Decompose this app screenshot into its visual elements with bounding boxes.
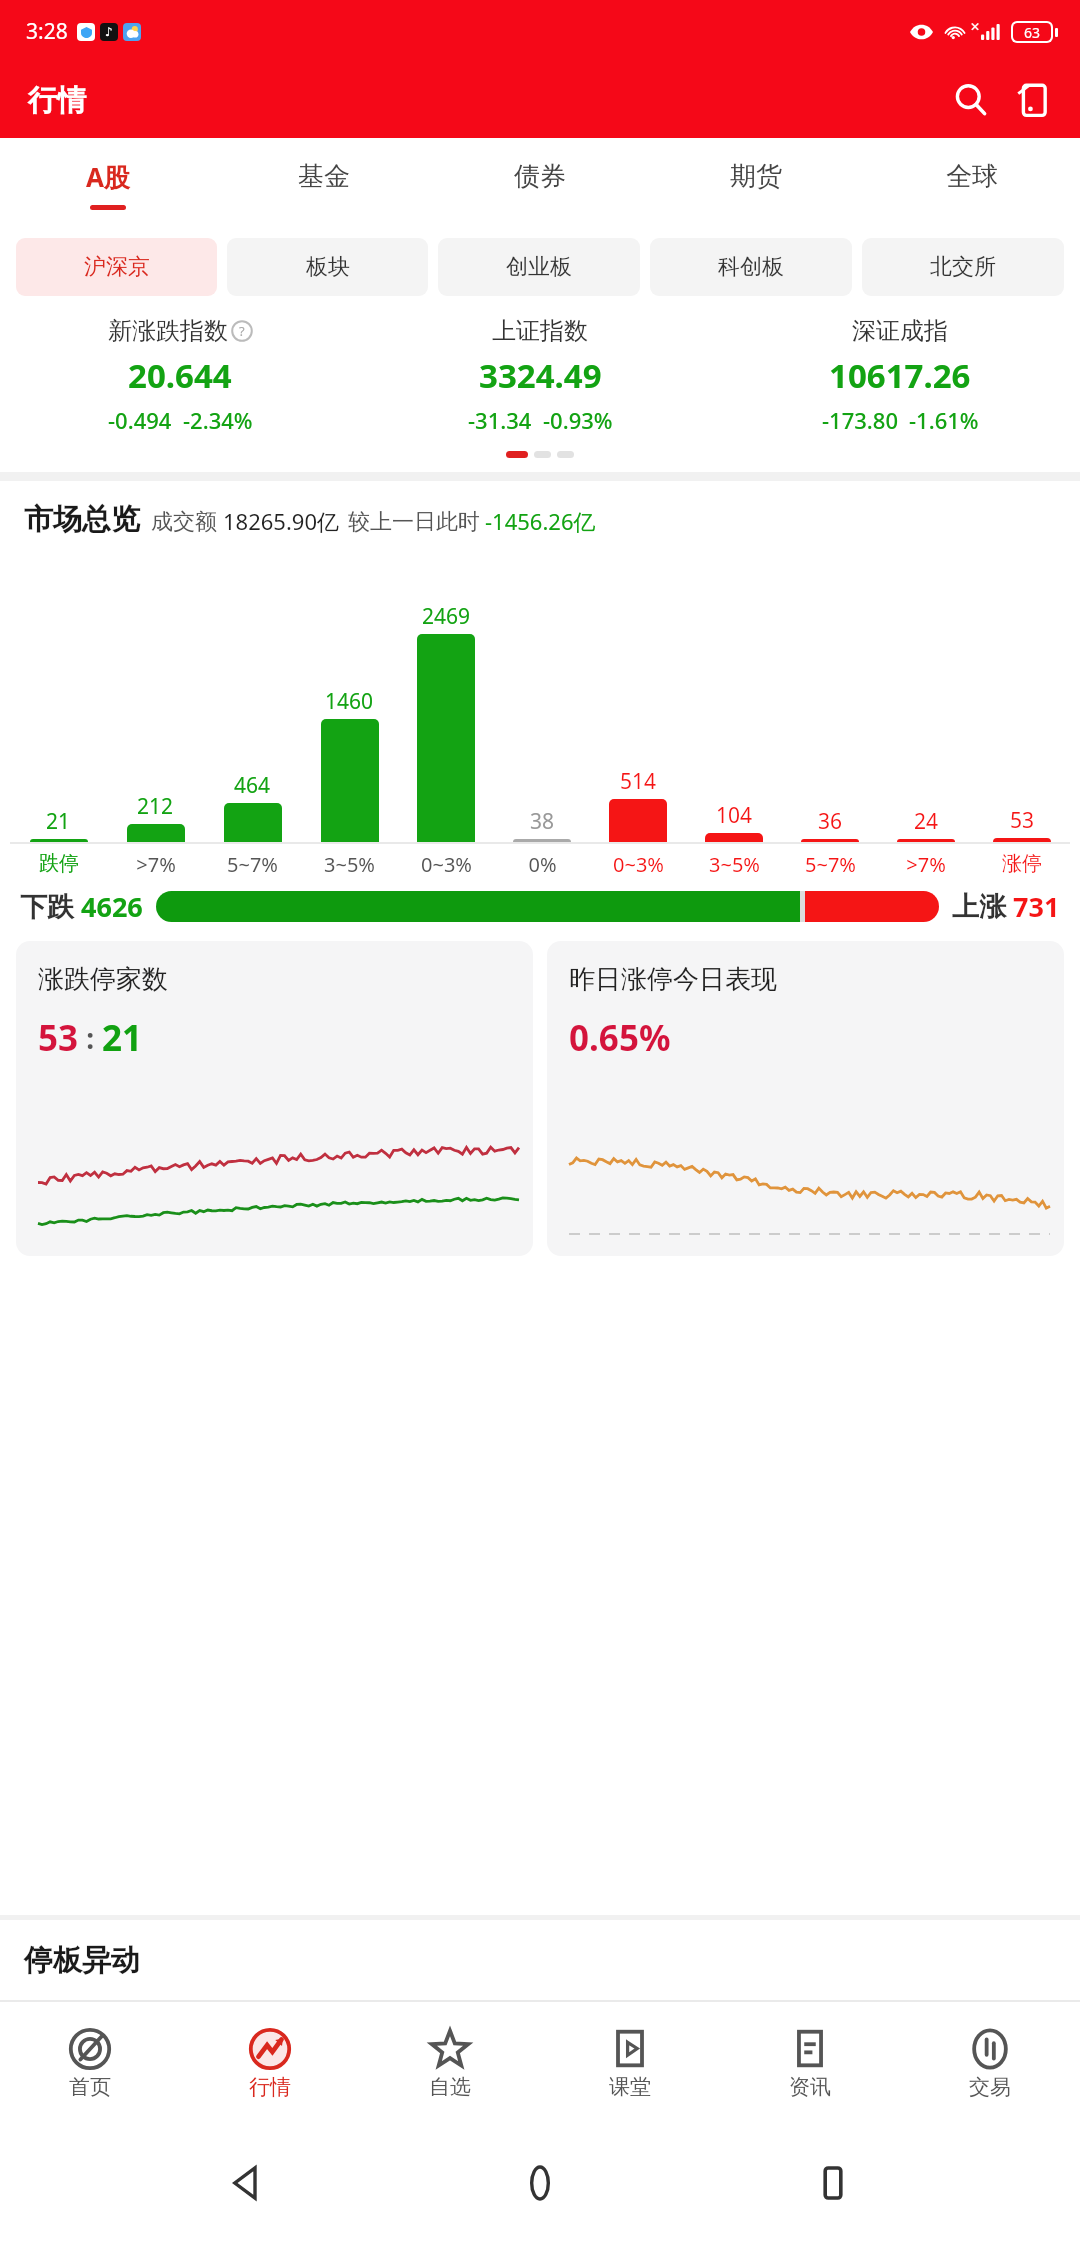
staticText: 0~3%: [421, 851, 472, 878]
staticText: 新涨跌指数: [108, 316, 228, 346]
staticText: 深证成指: [852, 316, 948, 346]
staticText: 5~7%: [805, 851, 856, 878]
button[interactable]: 课堂: [540, 2002, 720, 2122]
staticText: 21: [102, 1014, 143, 1062]
staticText: 科创板: [718, 253, 784, 281]
button[interactable]: 创业板: [438, 238, 640, 296]
staticText: 3~5%: [709, 851, 760, 878]
button[interactable]: 行情: [180, 2002, 360, 2122]
button[interactable]: Recent apps: [787, 2137, 879, 2229]
button[interactable]: 期货: [648, 138, 864, 230]
button[interactable]: 514: [590, 550, 686, 842]
button[interactable]: 下跌: [20, 888, 1060, 925]
button[interactable]: 基金: [216, 138, 432, 230]
staticText: A股: [86, 159, 130, 195]
staticText: ♪: [105, 25, 113, 39]
button[interactable]: 市场总览: [24, 501, 1068, 538]
button[interactable]: 104: [686, 550, 782, 842]
staticText: -0.93%: [543, 405, 613, 435]
staticText: 0~3%: [613, 851, 664, 878]
staticText: 731: [1013, 888, 1060, 925]
staticText: -2.34%: [183, 405, 253, 435]
staticText: ?: [239, 322, 245, 340]
staticText: -1456.26亿: [485, 506, 596, 536]
staticText: 自选: [429, 2074, 471, 2100]
staticText: 514: [620, 767, 657, 796]
staticText: -31.34: [468, 405, 532, 435]
button[interactable]: 沪深京: [16, 238, 217, 296]
staticText: >7%: [136, 851, 176, 878]
staticText: 停板异动: [24, 1942, 140, 1979]
button[interactable]: 新涨跌指数: [0, 316, 360, 435]
button[interactable]: 板块: [227, 238, 428, 296]
button[interactable]: 36: [782, 550, 878, 842]
staticText: 首页: [69, 2074, 111, 2100]
staticText: 成交额: [151, 508, 217, 536]
staticText: 期货: [730, 160, 782, 193]
staticText: :: [79, 1019, 102, 1057]
staticText: -173.80: [822, 405, 898, 435]
staticText: 跌停: [39, 851, 79, 876]
staticText: 行情: [28, 82, 86, 119]
staticText: 24: [914, 807, 939, 836]
button[interactable]: 昨日涨停今日表现: [547, 941, 1064, 1256]
button[interactable]: 24: [878, 550, 974, 842]
staticText: 上涨: [952, 890, 1006, 924]
staticText: 38: [530, 807, 555, 836]
staticText: 18265.90亿: [223, 506, 339, 536]
button[interactable]: A股: [0, 138, 216, 230]
staticText: 交易: [969, 2074, 1011, 2100]
button[interactable]: 38: [494, 550, 590, 842]
button[interactable]: 首页: [0, 2002, 180, 2122]
staticText: 全球: [946, 160, 998, 193]
button[interactable]: 212: [107, 550, 204, 842]
staticText: 104: [716, 801, 753, 830]
staticText: 53: [1010, 806, 1035, 835]
button[interactable]: 北交所: [862, 238, 1064, 296]
staticText: 5~7%: [227, 851, 278, 878]
staticText: 4626: [81, 888, 143, 925]
staticText: 涨停: [1002, 851, 1042, 876]
button[interactable]: 涨跌停家数: [16, 941, 533, 1256]
staticText: 212: [137, 792, 174, 821]
staticText: 市场总览: [24, 501, 140, 538]
button[interactable]: 53: [974, 550, 1070, 842]
staticText: 板块: [306, 253, 350, 281]
staticText: 1460: [325, 687, 374, 716]
staticText: 昨日涨停今日表现: [569, 963, 777, 996]
button[interactable]: Scan code: [1004, 71, 1062, 129]
button[interactable]: 科创板: [650, 238, 852, 296]
button[interactable]: 债券: [432, 138, 648, 230]
staticText: 3~5%: [324, 851, 375, 878]
staticText: 0%: [528, 851, 557, 878]
button[interactable]: 自选: [360, 2002, 540, 2122]
staticText: 涨跌停家数: [38, 963, 168, 996]
button[interactable]: 上证指数: [360, 316, 720, 435]
button[interactable]: 2469: [398, 550, 494, 842]
button[interactable]: Search: [942, 71, 1000, 129]
button[interactable]: 1460: [301, 550, 398, 842]
staticText: 63: [1024, 23, 1041, 41]
staticText: 36: [818, 807, 843, 836]
button[interactable]: 21: [10, 550, 107, 842]
staticText: 课堂: [609, 2074, 651, 2100]
staticText: 0.65%: [569, 1014, 671, 1062]
button[interactable]: 交易: [900, 2002, 1080, 2122]
staticText: 10617.26: [829, 353, 971, 398]
button[interactable]: 深证成指: [720, 316, 1080, 435]
staticText: 464: [234, 771, 271, 800]
staticText: 21: [46, 807, 71, 836]
staticText: 资讯: [789, 2074, 831, 2100]
staticText: -1.61%: [909, 405, 979, 435]
staticText: 基金: [298, 160, 350, 193]
button[interactable]: Back: [201, 2137, 293, 2229]
staticText: ✕: [970, 20, 981, 34]
staticText: 创业板: [506, 253, 572, 281]
staticText: 北交所: [930, 253, 996, 281]
button[interactable]: 全球: [864, 138, 1080, 230]
staticText: 3324.49: [479, 353, 602, 398]
button[interactable]: 464: [204, 550, 301, 842]
button[interactable]: 资讯: [720, 2002, 900, 2122]
button[interactable]: Home: [494, 2137, 586, 2229]
staticText: 2469: [422, 602, 471, 631]
